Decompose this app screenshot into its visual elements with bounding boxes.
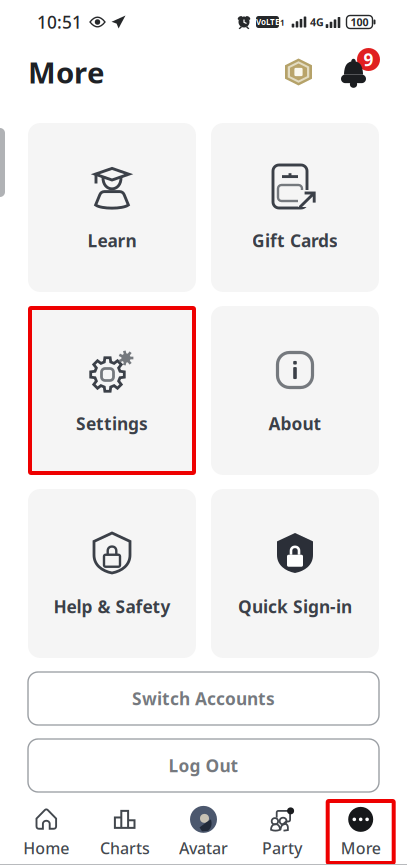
staticText: 1 (280, 17, 285, 28)
staticText: 100 (350, 15, 368, 29)
button[interactable]: Party (243, 801, 321, 863)
staticText: 4G (310, 15, 324, 29)
button[interactable]: About (211, 306, 379, 475)
button[interactable]: Log Out (28, 739, 379, 792)
staticText: About (268, 412, 321, 435)
staticText: Charts (100, 837, 150, 859)
staticText: VoLTE (256, 17, 279, 27)
button[interactable]: Robux (275, 49, 322, 95)
staticText: Home (23, 837, 69, 859)
staticText: Settings (76, 412, 148, 435)
button[interactable]: Charts (86, 801, 164, 863)
button[interactable]: Gift Cards (211, 123, 379, 292)
staticText: 10:51 (37, 10, 82, 33)
button[interactable]: Avatar (164, 801, 243, 863)
staticText: 9 (363, 48, 373, 71)
staticText: Gift Cards (252, 229, 338, 252)
staticText: Help & Safety (53, 595, 170, 618)
staticText: Party (262, 837, 302, 859)
button[interactable]: More (321, 801, 400, 863)
staticText: Avatar (179, 837, 228, 859)
staticText: Learn (87, 229, 136, 252)
staticText: Quick Sign-in (238, 595, 352, 618)
button[interactable]: Learn (28, 123, 196, 292)
staticText: Log Out (168, 754, 238, 777)
staticText: More (341, 837, 381, 859)
button[interactable]: Help & Safety (28, 489, 196, 658)
button[interactable]: Home (7, 801, 86, 863)
button[interactable]: Notifications (337, 48, 381, 96)
staticText: More (28, 52, 105, 91)
button[interactable]: Settings (28, 306, 196, 475)
staticText: Switch Accounts (132, 687, 275, 710)
button[interactable]: Quick Sign-in (211, 489, 379, 658)
button[interactable]: Switch Accounts (28, 672, 379, 725)
